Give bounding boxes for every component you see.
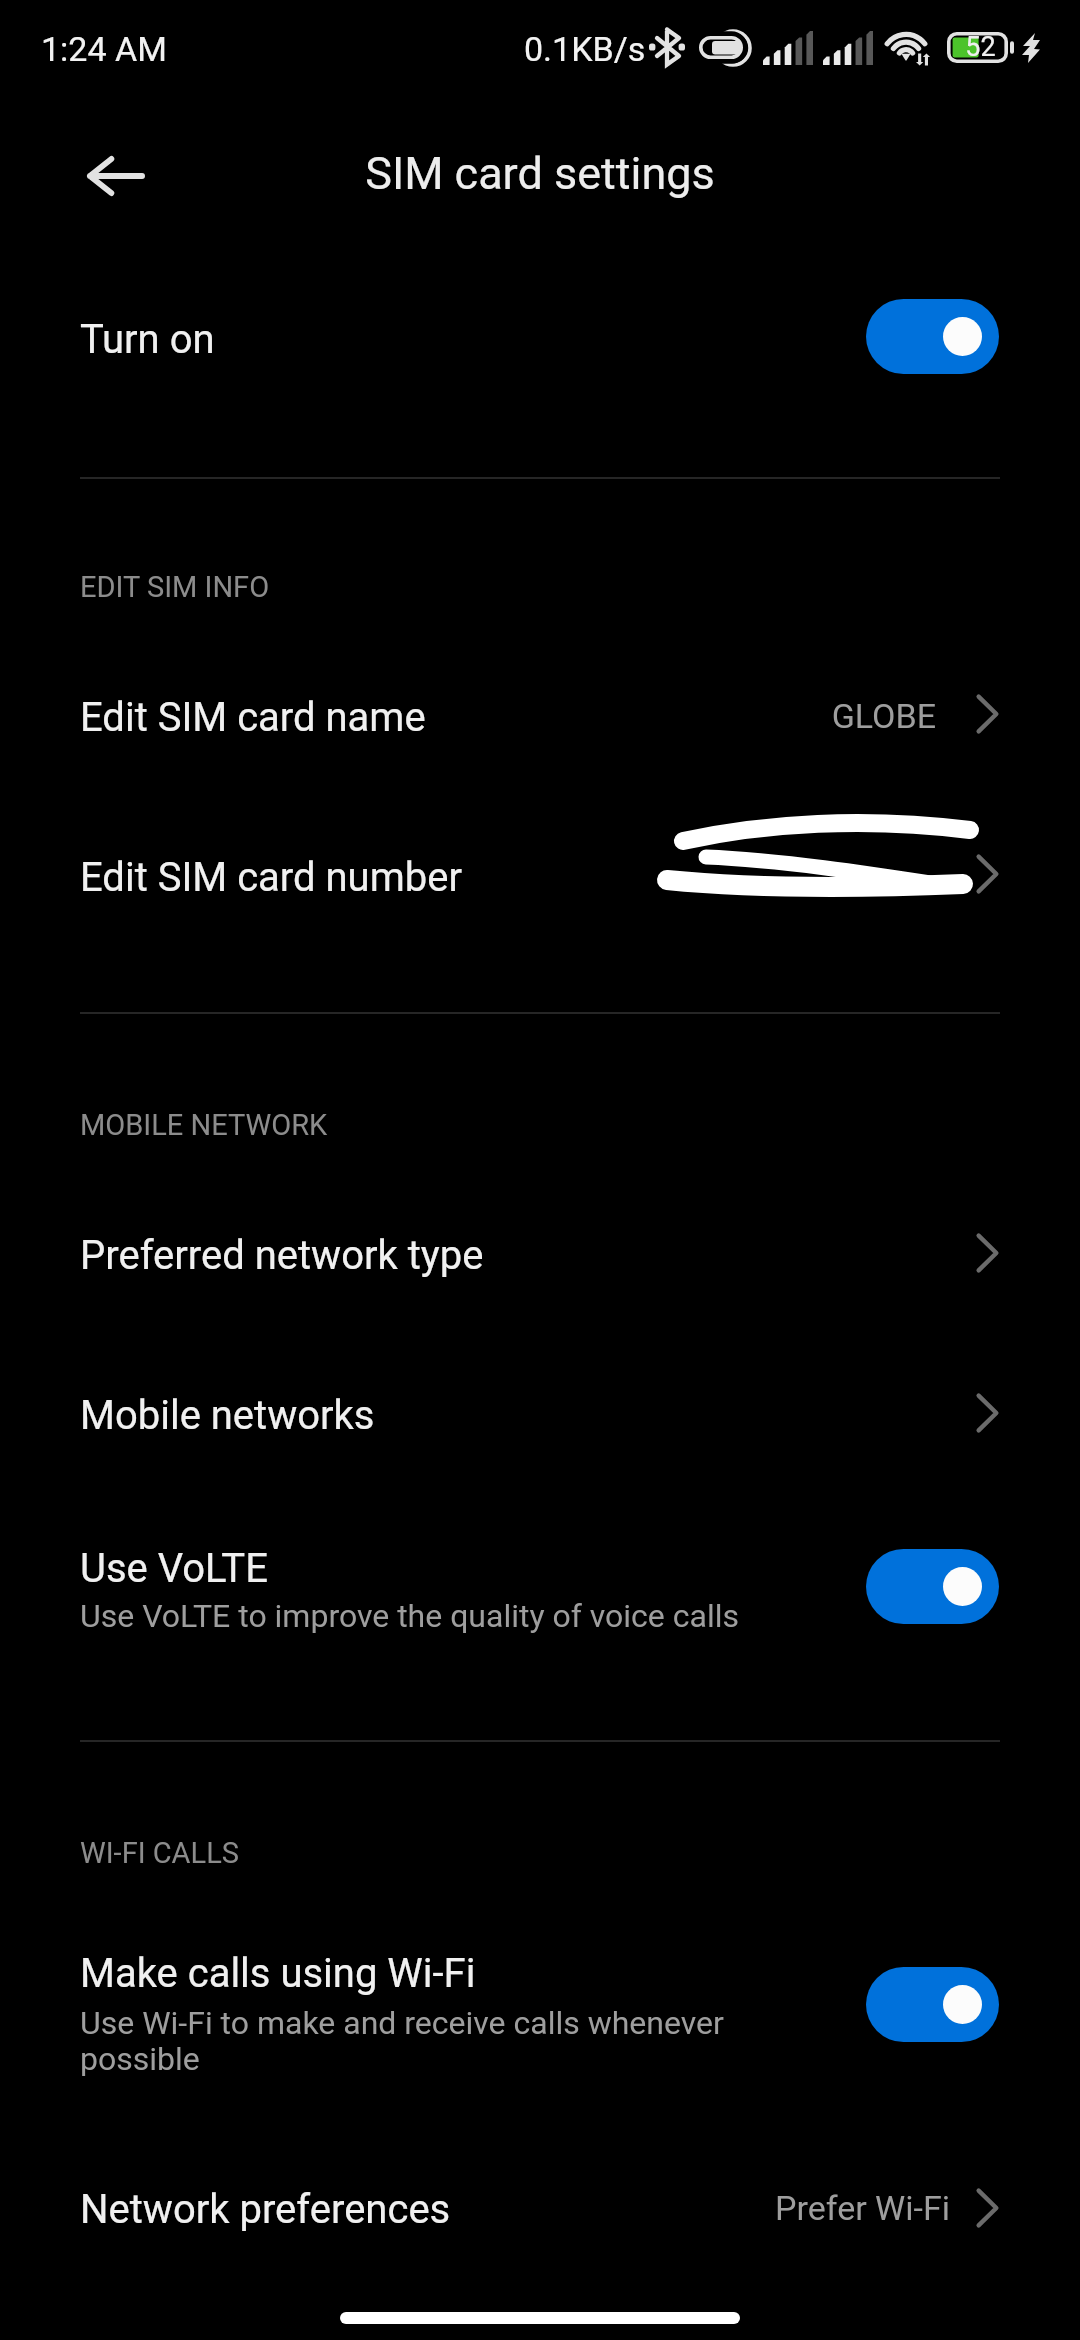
- staticText: Turn on: [80, 316, 215, 363]
- button[interactable]: Toggle on: [866, 299, 999, 374]
- button[interactable]: Preferred network type: [0, 1190, 1080, 1320]
- staticText: Use Wi-Fi to make and receive calls when…: [80, 2004, 780, 2078]
- button[interactable]: Edit SIM card number: [0, 800, 1080, 940]
- button[interactable]: Edit SIM card name: [0, 652, 1080, 780]
- staticText: MOBILE NETWORK: [80, 1108, 328, 1142]
- staticText: Prefer Wi-Fi: [775, 2188, 950, 2228]
- button[interactable]: Make calls using Wi-Fi: [0, 1905, 1080, 2100]
- button[interactable]: Turn on: [0, 250, 1080, 430]
- button[interactable]: Mobile networks: [0, 1350, 1080, 1476]
- staticText: 0.1KB/s: [524, 29, 646, 69]
- button[interactable]: Toggle on: [866, 1967, 999, 2042]
- staticText: Mobile networks: [80, 1392, 375, 1439]
- staticText: WI-FI CALLS: [80, 1836, 239, 1870]
- staticText: GLOBE: [831, 696, 936, 736]
- staticText: Use VoLTE to improve the quality of voic…: [80, 1597, 980, 1635]
- button[interactable]: Toggle on: [866, 1549, 999, 1624]
- staticText: Preferred network type: [80, 1232, 484, 1279]
- staticText: EDIT SIM INFO: [80, 570, 270, 604]
- staticText: 1:24 AM: [41, 29, 167, 69]
- button[interactable]: Use VoLTE: [0, 1500, 1080, 1680]
- button[interactable]: Network preferences: [0, 2150, 1080, 2275]
- staticText: Make calls using Wi-Fi: [80, 1950, 476, 1997]
- staticText: 52: [965, 31, 996, 62]
- staticText: Edit SIM card number: [80, 854, 462, 901]
- staticText: SIM card settings: [0, 147, 1080, 200]
- button[interactable]: Navigate up: [60, 120, 172, 232]
- staticText: Use VoLTE: [80, 1545, 268, 1592]
- staticText: Edit SIM card name: [80, 694, 426, 741]
- staticText: Network preferences: [80, 2186, 451, 2233]
